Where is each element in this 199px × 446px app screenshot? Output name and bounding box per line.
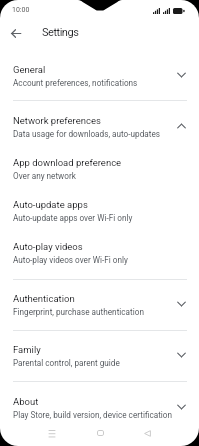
- button[interactable]: Back: [5, 23, 26, 44]
- staticText: Account preferences, notifications: [13, 78, 138, 88]
- staticText: Play Store, build version, device certif…: [13, 410, 173, 420]
- staticText: Auto-update apps: [13, 199, 88, 210]
- button[interactable]: General: [0, 60, 199, 90]
- staticText: Authentication: [13, 293, 75, 304]
- button[interactable]: Auto-play videos: [0, 237, 199, 267]
- button[interactable]: Back: [133, 419, 161, 446]
- button[interactable]: Home: [86, 419, 114, 446]
- button[interactable]: Authentication: [0, 289, 199, 319]
- staticText: About: [13, 396, 39, 407]
- staticText: Auto-play videos over Wi-Fi only: [13, 255, 128, 265]
- button[interactable]: About: [0, 392, 199, 422]
- button[interactable]: App download preference: [0, 153, 199, 183]
- button[interactable]: Auto-update apps: [0, 195, 199, 225]
- staticText: General: [13, 64, 46, 75]
- staticText: Data usage for downloads, auto-updates: [13, 129, 160, 139]
- staticText: Fingerprint, purchase authentication: [13, 307, 144, 317]
- button[interactable]: Network preferences: [0, 111, 199, 141]
- staticText: Auto-play videos: [13, 241, 83, 252]
- staticText: Auto-update apps over Wi-Fi only: [13, 213, 133, 223]
- staticText: Parental control, parent guide: [13, 358, 120, 368]
- staticText: 10:00: [12, 6, 30, 14]
- staticText: Over any network: [13, 171, 76, 181]
- button[interactable]: Recent apps: [38, 419, 66, 446]
- button[interactable]: Family: [0, 340, 199, 370]
- staticText: App download preference: [13, 157, 122, 168]
- staticText: Settings: [42, 26, 79, 39]
- staticText: Family: [13, 344, 41, 355]
- staticText: Network preferences: [13, 115, 101, 126]
